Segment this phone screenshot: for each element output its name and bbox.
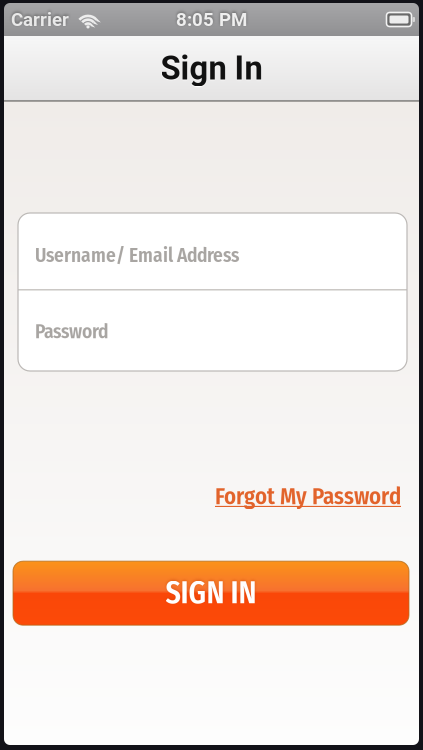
staticText: Carrier	[11, 9, 69, 30]
staticText: Password	[35, 320, 108, 343]
button[interactable]: Forgot My Password	[215, 483, 401, 510]
staticText: 8:05 PM	[176, 9, 247, 30]
staticText: Username/ Email Address	[35, 244, 239, 267]
staticText: SIGN IN	[165, 575, 256, 611]
staticText: Sign In	[160, 49, 262, 87]
button[interactable]: SIGN IN	[13, 561, 409, 625]
staticText: Forgot My Password	[215, 483, 401, 510]
button[interactable]: Username/ Email Address	[18, 213, 407, 289]
button[interactable]: Password	[18, 290, 407, 371]
